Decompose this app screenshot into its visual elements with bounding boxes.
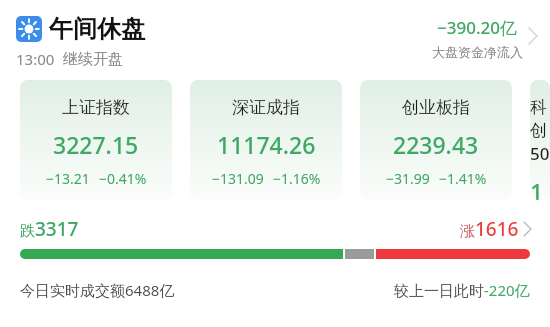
staticText: 1012.55 bbox=[530, 176, 550, 200]
staticText: −131.09 bbox=[212, 169, 264, 188]
staticText: 科创50 bbox=[530, 97, 550, 165]
staticText: 涨1616 bbox=[460, 216, 519, 242]
staticText: 上证指数 bbox=[62, 97, 130, 118]
staticText: 创业板指 bbox=[402, 97, 470, 118]
staticText: 大盘资金净流入 bbox=[432, 44, 523, 60]
button[interactable]: 跌3317 bbox=[0, 216, 550, 242]
button[interactable]: 创业板指 bbox=[360, 80, 512, 200]
button[interactable]: −390.20亿 bbox=[428, 14, 540, 60]
staticText: 跌3317 bbox=[20, 216, 79, 242]
staticText: 继续开盘 bbox=[63, 50, 123, 69]
staticText: −1.41% bbox=[439, 169, 487, 188]
button[interactable]: 科创50 bbox=[530, 80, 550, 200]
staticText: 2239.43 bbox=[393, 129, 479, 160]
other: 查看大盘资金净流入 bbox=[526, 26, 540, 46]
staticText: −13.21 bbox=[46, 169, 90, 188]
staticText: −390.20亿 bbox=[437, 16, 518, 39]
other: 查看涨跌详情 bbox=[521, 220, 534, 238]
staticText: 午间休盘 bbox=[49, 14, 145, 44]
staticText: −1.16% bbox=[273, 169, 321, 188]
staticText: 深证成指 bbox=[232, 97, 300, 118]
button[interactable]: 深证成指 bbox=[190, 80, 342, 200]
staticText: −0.41% bbox=[99, 169, 147, 188]
staticText: 11174.26 bbox=[217, 129, 316, 160]
staticText: 3227.15 bbox=[53, 129, 139, 160]
staticText: 今日实时成交额6488亿 bbox=[20, 280, 175, 300]
staticText: −31.99 bbox=[386, 169, 430, 188]
staticText: 较上一日此时-220亿 bbox=[394, 280, 530, 300]
button[interactable]: 上证指数 bbox=[20, 80, 172, 200]
staticText: 13:00 bbox=[16, 49, 55, 69]
